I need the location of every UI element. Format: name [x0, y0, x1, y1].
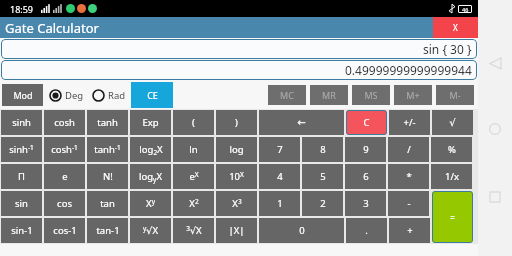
button[interactable]: eX	[173, 164, 214, 189]
staticText: =	[450, 212, 455, 223]
button[interactable]: tanh-1	[87, 137, 128, 162]
staticText: sinh-1	[9, 143, 34, 156]
staticText: eX	[189, 170, 199, 183]
button[interactable]: logyX	[130, 164, 171, 189]
button[interactable]: sin { 30 }	[1, 39, 477, 59]
button[interactable]: tanh	[87, 110, 128, 135]
button[interactable]: CE	[131, 82, 173, 108]
staticText: Mod	[13, 89, 33, 101]
staticText: 5	[320, 170, 326, 183]
button[interactable]: MS	[352, 85, 390, 105]
button[interactable]: +/-	[389, 110, 430, 135]
staticText: CE	[147, 89, 158, 101]
button[interactable]: 7	[259, 137, 300, 162]
button[interactable]: %	[431, 137, 472, 162]
staticText: 8	[320, 143, 326, 156]
button[interactable]: M-	[436, 85, 474, 105]
button[interactable]: 1/x	[431, 164, 472, 189]
button[interactable]: 4	[259, 164, 300, 189]
button[interactable]: 5	[302, 164, 343, 189]
button[interactable]: 10X	[216, 164, 257, 189]
button[interactable]: Deg	[49, 89, 84, 102]
button[interactable]: Home	[484, 118, 506, 140]
button[interactable]: +	[389, 218, 430, 243]
staticText: Exp	[142, 116, 159, 129]
button[interactable]: 6	[345, 164, 386, 189]
button[interactable]: 9	[345, 137, 386, 162]
staticText: 3√X	[186, 224, 202, 237]
staticText: ←	[297, 117, 306, 129]
button[interactable]: cos-1	[44, 218, 85, 243]
button[interactable]: C	[346, 110, 387, 135]
button[interactable]: X3	[216, 191, 257, 216]
button[interactable]: Back	[484, 52, 506, 74]
button[interactable]: MR	[310, 85, 348, 105]
button[interactable]: tan	[87, 191, 128, 216]
staticText: )	[235, 116, 238, 129]
button[interactable]: sin-1	[1, 218, 42, 243]
button[interactable]: Exp	[130, 110, 171, 135]
button[interactable]: (	[173, 110, 214, 135]
button[interactable]: Rad	[92, 89, 126, 102]
button[interactable]: sin	[1, 191, 42, 216]
button[interactable]: 0.49999999999999944	[1, 60, 477, 80]
button[interactable]: 3√X	[173, 218, 214, 243]
button[interactable]: √	[432, 110, 473, 135]
staticText: y√X	[143, 224, 158, 237]
button[interactable]: -	[388, 191, 429, 216]
button[interactable]: cos	[44, 191, 85, 216]
staticText: ln	[189, 143, 198, 156]
button[interactable]: MC	[268, 85, 306, 105]
button[interactable]: X2	[173, 191, 214, 216]
button[interactable]: .	[346, 218, 387, 243]
button[interactable]: e	[44, 164, 85, 189]
button[interactable]: 1	[259, 191, 300, 216]
staticText: 1/x	[445, 170, 459, 183]
button[interactable]: cosh-1	[44, 137, 85, 162]
staticText: Rad	[108, 89, 126, 102]
button[interactable]: )	[216, 110, 257, 135]
staticText: X3	[232, 197, 242, 210]
staticText: M-	[449, 89, 461, 101]
staticText: N!	[103, 170, 113, 183]
button[interactable]: 8	[302, 137, 343, 162]
button[interactable]: cosh	[44, 110, 85, 135]
staticText: √	[449, 117, 456, 128]
button[interactable]: Recents	[484, 186, 506, 208]
button[interactable]: |X|	[216, 218, 257, 243]
staticText: log	[229, 143, 244, 156]
button[interactable]: 2	[302, 191, 343, 216]
button[interactable]: y√X	[130, 218, 171, 243]
button[interactable]: Xy	[130, 191, 171, 216]
staticText: Deg	[65, 89, 84, 102]
button[interactable]: Close	[433, 17, 478, 38]
staticText: sin	[15, 197, 28, 210]
button[interactable]: ←	[259, 110, 344, 135]
staticText: /	[407, 143, 411, 156]
button[interactable]: tan-1	[87, 218, 128, 243]
button[interactable]: log	[216, 137, 257, 162]
staticText: cos	[57, 197, 72, 210]
staticText: cos-1	[53, 224, 77, 237]
button[interactable]: log2X	[130, 137, 171, 162]
button[interactable]: =	[432, 191, 473, 243]
staticText: X	[453, 22, 458, 33]
staticText: tanh	[97, 116, 118, 129]
staticText: -	[407, 197, 411, 210]
staticText: *	[406, 170, 412, 183]
staticText: log2X	[139, 143, 163, 157]
button[interactable]: sinh-1	[1, 137, 42, 162]
button[interactable]: Π	[1, 164, 42, 189]
button[interactable]: *	[388, 164, 429, 189]
button[interactable]: /	[388, 137, 429, 162]
button[interactable]: M+	[394, 85, 432, 105]
button[interactable]: 0	[259, 218, 344, 243]
staticText: tanh-1	[94, 143, 121, 156]
staticText: +/-	[403, 116, 416, 129]
button[interactable]: 3	[345, 191, 386, 216]
button[interactable]: Mod	[2, 84, 43, 106]
button[interactable]: N!	[87, 164, 128, 189]
staticText: M+	[406, 89, 420, 101]
button[interactable]: sinh	[1, 110, 42, 135]
button[interactable]: ln	[173, 137, 214, 162]
